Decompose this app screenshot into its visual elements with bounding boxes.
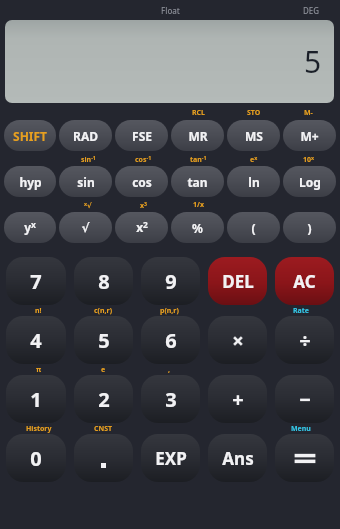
button[interactable]: MR xyxy=(171,120,224,151)
staticText: Rate xyxy=(293,306,310,316)
staticText: M- xyxy=(304,108,313,118)
staticText: CNST xyxy=(94,424,113,434)
button[interactable]: sin xyxy=(59,166,112,197)
staticText: 5 xyxy=(304,41,322,82)
button[interactable]: DEL xyxy=(208,257,267,305)
button[interactable]: 6 xyxy=(141,316,200,364)
button[interactable]: + xyxy=(208,375,267,423)
staticText: π xyxy=(36,365,42,375)
button[interactable]: ln xyxy=(227,166,280,197)
button[interactable]: ) xyxy=(283,212,336,243)
staticText: cos-1 xyxy=(135,154,152,164)
button[interactable]: ( xyxy=(227,212,280,243)
button[interactable]: 4 xyxy=(6,316,66,364)
button[interactable]: RAD xyxy=(59,120,112,151)
staticText: x3 xyxy=(140,200,148,210)
staticText: 0 xyxy=(30,445,42,472)
button[interactable]: SHIFT xyxy=(4,120,56,151)
button[interactable]: √ xyxy=(59,212,112,243)
staticText: 2 xyxy=(98,386,110,413)
staticText: ( xyxy=(251,220,256,236)
button[interactable]: 5 xyxy=(5,20,334,103)
button[interactable]: × xyxy=(208,316,267,364)
staticText: ln xyxy=(248,174,260,190)
button[interactable]: M+ xyxy=(283,120,336,151)
button[interactable]: ÷ xyxy=(275,316,334,364)
staticText: 3 xyxy=(165,386,177,413)
button[interactable]: Ans xyxy=(208,434,267,482)
button[interactable]: = xyxy=(275,434,334,482)
staticText: SHIFT xyxy=(13,128,47,144)
staticText: M+ xyxy=(300,128,319,144)
staticText: tan-1 xyxy=(190,154,207,164)
button[interactable]: tan xyxy=(171,166,224,197)
staticText: cos xyxy=(132,174,152,190)
staticText: STO xyxy=(247,108,261,118)
button[interactable]: 3 xyxy=(141,375,200,423)
staticText: 1 xyxy=(30,386,42,413)
button[interactable]: cos xyxy=(115,166,168,197)
staticText: 7 xyxy=(30,268,42,295)
staticText: p(n,r) xyxy=(160,306,179,316)
staticText: RCL xyxy=(192,108,205,118)
staticText: tan xyxy=(187,174,208,190)
staticText: x2 xyxy=(136,219,148,236)
staticText: 1/x xyxy=(193,200,204,210)
staticText: 4 xyxy=(30,327,42,354)
staticText: DEL xyxy=(222,270,254,293)
staticText: 9 xyxy=(165,268,177,295)
staticText: FSE xyxy=(132,128,152,144)
staticText: Float xyxy=(161,5,180,16)
button[interactable]: . xyxy=(74,434,133,482)
button[interactable]: 7 xyxy=(6,257,66,305)
staticText: sin-1 xyxy=(81,154,96,164)
staticText: RAD xyxy=(73,128,98,144)
staticText: 6 xyxy=(165,327,177,354)
staticText: × xyxy=(232,327,244,354)
button[interactable]: − xyxy=(275,375,334,423)
staticText: Menu xyxy=(291,424,311,434)
button[interactable]: FSE xyxy=(115,120,168,151)
staticText: EXP xyxy=(155,447,187,470)
staticText: , xyxy=(168,365,170,375)
staticText: ) xyxy=(307,220,312,236)
button[interactable]: 1 xyxy=(6,375,66,423)
staticText: sin xyxy=(77,174,95,190)
button[interactable]: 9 xyxy=(141,257,200,305)
button[interactable]: x2 xyxy=(115,212,168,243)
button[interactable]: 2 xyxy=(74,375,133,423)
staticText: Ans xyxy=(222,447,254,470)
staticText: ÷ xyxy=(299,327,311,354)
staticText: √ xyxy=(81,221,90,235)
staticText: ex xyxy=(250,154,258,164)
staticText: e xyxy=(101,365,106,375)
staticText: hyp xyxy=(19,174,42,190)
button[interactable]: Log xyxy=(283,166,336,197)
staticText: % xyxy=(192,220,203,236)
button[interactable]: % xyxy=(171,212,224,243)
staticText: MR xyxy=(188,128,208,144)
staticText: + xyxy=(232,386,244,413)
staticText: 5 xyxy=(98,327,110,354)
button[interactable]: 5 xyxy=(74,316,133,364)
button[interactable]: hyp xyxy=(4,166,56,197)
staticText: n! xyxy=(35,306,42,316)
staticText: History xyxy=(26,424,52,434)
button[interactable]: EXP xyxy=(141,434,200,482)
staticText: x√ xyxy=(84,200,92,210)
staticText: 8 xyxy=(98,268,110,295)
button[interactable]: 0 xyxy=(6,434,66,482)
staticText: AC xyxy=(293,270,316,293)
staticText: − xyxy=(299,386,311,413)
staticText: Log xyxy=(299,174,321,190)
button[interactable]: AC xyxy=(275,257,334,305)
button[interactable]: yx xyxy=(4,212,56,243)
staticText: MS xyxy=(245,128,263,144)
staticText: 10x xyxy=(303,154,315,164)
button[interactable]: 8 xyxy=(74,257,133,305)
button[interactable]: MS xyxy=(227,120,280,151)
staticText: DEG xyxy=(303,5,320,16)
staticText: c(n,r) xyxy=(94,306,113,316)
staticText: yx xyxy=(24,219,36,236)
